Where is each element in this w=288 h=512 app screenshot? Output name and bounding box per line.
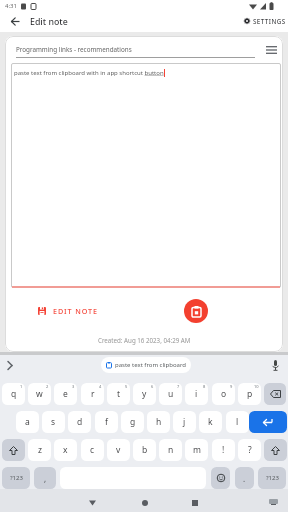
staticText: 1 — [20, 384, 23, 389]
staticText: Edit note — [30, 16, 68, 28]
button[interactable] — [142, 500, 148, 506]
staticText: g — [130, 416, 136, 428]
staticText: l — [236, 416, 239, 428]
button[interactable] — [211, 467, 230, 489]
staticText: SETTINGS — [253, 17, 286, 26]
button[interactable]: l — [226, 411, 249, 433]
staticText: k — [208, 416, 213, 428]
button[interactable] — [184, 299, 208, 323]
staticText: s — [51, 416, 56, 428]
button[interactable]: r — [81, 383, 104, 405]
button[interactable]: e — [54, 383, 77, 405]
staticText: h — [156, 416, 162, 428]
button[interactable]: h — [147, 411, 170, 433]
staticText: i — [195, 388, 198, 400]
staticText: n — [168, 444, 174, 456]
button[interactable]: Programming links - recommendations — [16, 45, 132, 54]
button[interactable]: z — [28, 439, 51, 461]
staticText: 4:31 — [5, 2, 17, 10]
staticText: z — [38, 444, 42, 456]
button[interactable]: b — [133, 439, 156, 461]
staticText: d — [77, 416, 83, 428]
button[interactable]: ?123 — [258, 467, 286, 489]
button[interactable]: paste text from clipboard — [101, 357, 191, 373]
button[interactable]: SETTINGS — [244, 16, 286, 26]
staticText: paste text from clipboard with in app sh… — [14, 69, 164, 77]
button[interactable] — [264, 383, 286, 405]
staticText: 4 — [99, 384, 102, 389]
button[interactable]: . — [235, 467, 254, 489]
staticText: 7 — [177, 384, 180, 389]
staticText: Created: Aug 16 2023, 04:29 AM — [98, 336, 191, 344]
staticText: 10 — [254, 384, 259, 389]
staticText: r — [91, 388, 95, 400]
button[interactable]: f — [95, 411, 118, 433]
staticText: m — [193, 444, 201, 456]
staticText: ? — [248, 444, 252, 456]
button[interactable]: w — [28, 383, 51, 405]
staticText: p — [247, 388, 253, 400]
button[interactable]: ?123 — [2, 467, 30, 489]
staticText: w — [36, 388, 43, 400]
staticText: paste text from clipboard — [115, 361, 186, 369]
button[interactable]: u — [159, 383, 182, 405]
staticText: c — [90, 444, 95, 456]
staticText: t — [117, 388, 121, 400]
button[interactable] — [271, 360, 280, 371]
button[interactable]: k — [199, 411, 222, 433]
staticText: v — [116, 444, 121, 456]
button[interactable]: ! — [212, 439, 235, 461]
staticText: 9 — [230, 384, 233, 389]
button[interactable]: x — [54, 439, 77, 461]
button[interactable] — [2, 439, 25, 461]
button[interactable]: g — [121, 411, 144, 433]
button[interactable]: m — [185, 439, 208, 461]
button[interactable]: EDIT NOTE — [38, 304, 98, 318]
staticText: 3 — [72, 384, 75, 389]
staticText: e — [63, 388, 68, 400]
button[interactable]: v — [107, 439, 130, 461]
staticText: , — [44, 473, 47, 484]
button[interactable]: t — [107, 383, 130, 405]
button[interactable]: o — [212, 383, 235, 405]
staticText: j — [183, 416, 186, 428]
staticText: f — [105, 416, 108, 428]
staticText: ?123 — [10, 474, 23, 482]
staticText: a — [25, 416, 30, 428]
button[interactable]: a — [16, 411, 39, 433]
button[interactable] — [249, 411, 287, 433]
button[interactable]: ? — [238, 439, 261, 461]
button[interactable] — [11, 17, 20, 26]
staticText: ! — [222, 444, 225, 456]
button[interactable]: y — [133, 383, 156, 405]
button[interactable]: j — [173, 411, 196, 433]
button[interactable] — [269, 499, 278, 505]
staticText: x — [63, 444, 68, 456]
staticText: 2 — [46, 384, 49, 389]
button[interactable] — [89, 500, 96, 506]
staticText: ?123 — [266, 474, 279, 482]
staticText: o — [221, 388, 227, 400]
button[interactable]: s — [42, 411, 65, 433]
staticText: y — [142, 388, 147, 400]
staticText: u — [168, 388, 174, 400]
button[interactable]: , — [34, 467, 56, 489]
button[interactable]: n — [159, 439, 182, 461]
staticText: 6 — [151, 384, 154, 389]
button[interactable] — [264, 439, 287, 461]
button[interactable]: p — [238, 383, 261, 405]
staticText: q — [11, 388, 17, 400]
button[interactable] — [7, 361, 13, 370]
staticText: 5 — [125, 384, 128, 389]
staticText: EDIT NOTE — [53, 306, 98, 316]
staticText: 8 — [203, 384, 206, 389]
button[interactable] — [266, 46, 277, 54]
button[interactable]: q — [2, 383, 25, 405]
staticText: b — [142, 444, 148, 456]
button[interactable]: i — [185, 383, 208, 405]
button[interactable]: d — [68, 411, 91, 433]
button[interactable]: c — [81, 439, 104, 461]
staticText: . — [243, 473, 246, 484]
